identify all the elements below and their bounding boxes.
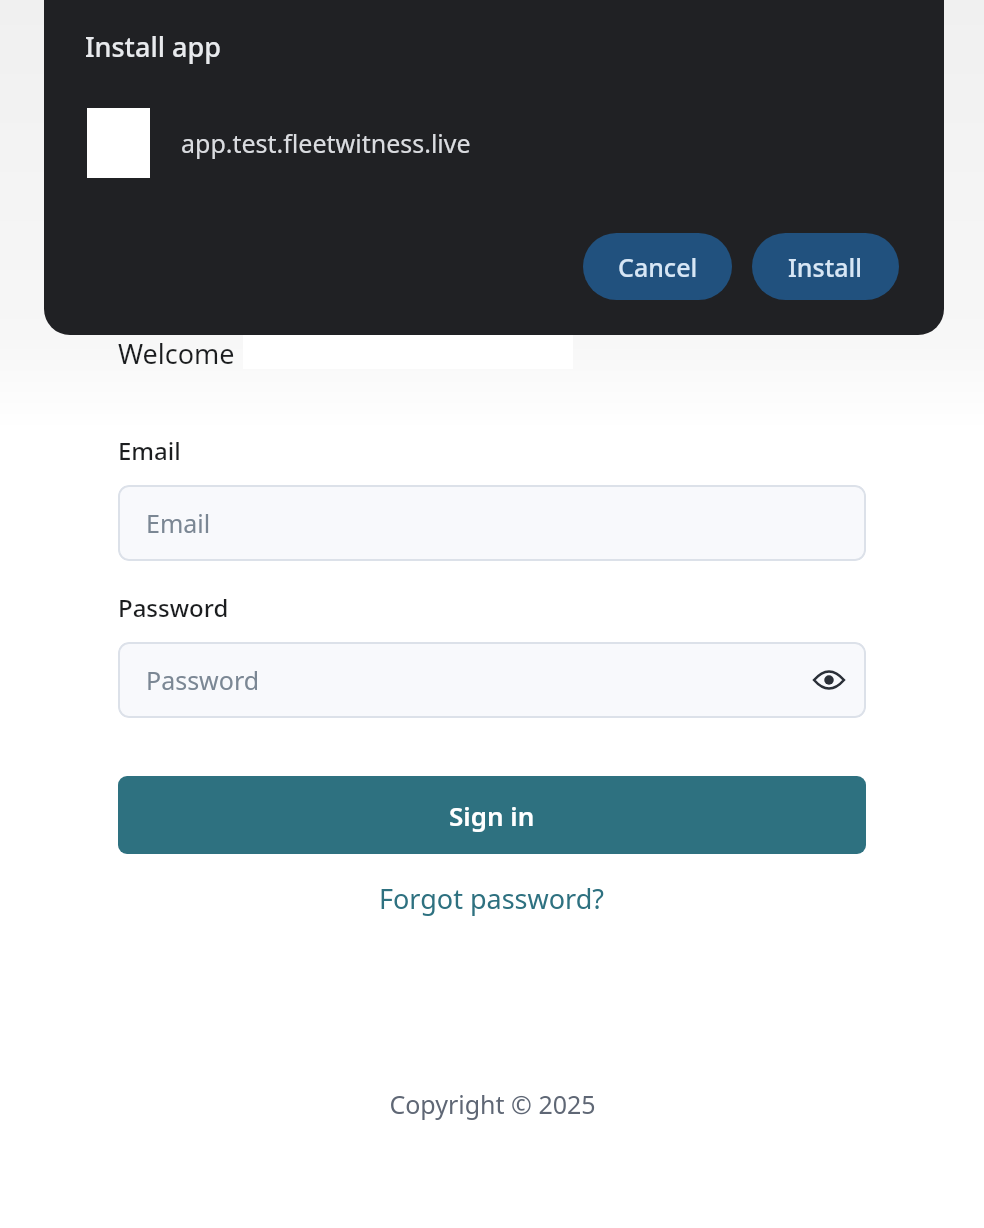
staticText: Install [788,250,863,284]
button[interactable]: Forgot password? [369,876,615,921]
button[interactable]: Install [752,233,899,300]
button[interactable]: Sign in [118,776,866,854]
staticText: app.test.fleetwitness.live [181,126,471,160]
button[interactable]: Password [118,642,866,718]
staticText: Password [146,663,260,697]
staticText: Password [118,591,229,624]
staticText: Welcome [118,335,235,372]
staticText: Copyright © 2025 [389,1087,596,1121]
button[interactable]: Email [118,485,866,561]
button[interactable]: Cancel [583,233,732,300]
staticText: Forgot password? [379,880,605,917]
staticText: Sign in [449,798,535,833]
staticText: Email [146,506,211,540]
staticText: Install app [85,28,221,65]
staticText: Email [118,434,181,467]
button[interactable]: Show password [806,657,852,703]
staticText: Cancel [618,250,698,284]
